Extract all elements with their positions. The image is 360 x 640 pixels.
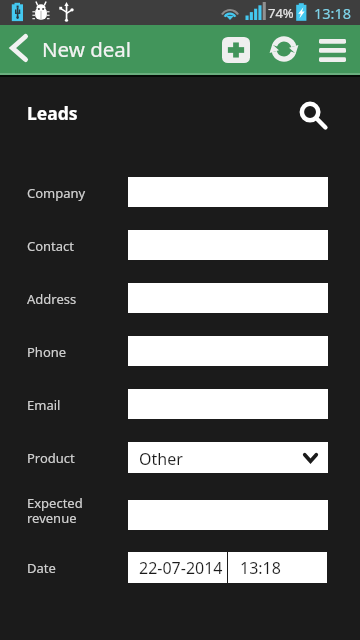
- button[interactable]: Add: [217, 32, 255, 68]
- staticText: 22-07-2014: [139, 557, 223, 579]
- button[interactable]: Search: [296, 98, 330, 132]
- button[interactable]: 13:18: [228, 552, 327, 583]
- button[interactable]: 22-07-2014: [128, 552, 227, 583]
- staticText: Address: [27, 290, 77, 308]
- staticText: Company: [27, 184, 86, 202]
- staticText: 13:18: [240, 557, 281, 579]
- staticText: Leads: [27, 101, 78, 125]
- staticText: Phone: [27, 343, 67, 361]
- button[interactable]: Refresh: [265, 30, 303, 68]
- staticText: Email: [27, 396, 61, 414]
- staticText: Contact: [27, 237, 75, 255]
- staticText: Product: [27, 449, 75, 467]
- staticText: Expected revenue: [27, 494, 83, 527]
- button[interactable]: Menu: [313, 32, 351, 68]
- staticText: 74%: [268, 4, 294, 22]
- staticText: Date: [27, 559, 56, 577]
- staticText: New deal: [42, 35, 132, 63]
- staticText: Other: [139, 448, 183, 470]
- staticText: 13:18: [314, 3, 352, 23]
- button[interactable]: Back: [2, 25, 36, 71]
- button[interactable]: Other: [128, 442, 328, 473]
